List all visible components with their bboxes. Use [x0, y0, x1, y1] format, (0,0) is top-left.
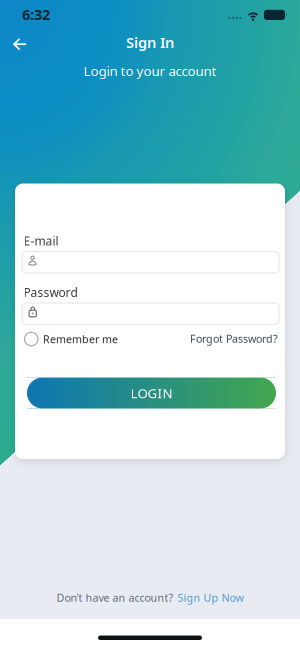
button[interactable]: Forgot Password?	[190, 331, 278, 346]
button[interactable]: Sign Up Now	[177, 590, 243, 605]
staticText: Remember me	[43, 332, 118, 346]
button[interactable]: Back	[7, 32, 33, 57]
button[interactable]: E-mail	[22, 251, 279, 273]
button[interactable]: LOGIN	[27, 377, 276, 408]
button[interactable]: Remember me	[24, 332, 118, 346]
staticText: Forgot Password?	[190, 331, 278, 346]
staticText: 6:32	[22, 4, 50, 24]
staticText: Password	[23, 284, 77, 300]
staticText: E-mail	[23, 233, 58, 249]
staticText: LOGIN	[130, 384, 172, 402]
staticText: Login to your account	[83, 62, 216, 80]
staticText: Don't have an account?	[56, 590, 173, 605]
staticText: Sign Up Now	[177, 590, 243, 605]
staticText: Sign In	[126, 32, 174, 52]
button[interactable]: Password	[22, 303, 279, 324]
